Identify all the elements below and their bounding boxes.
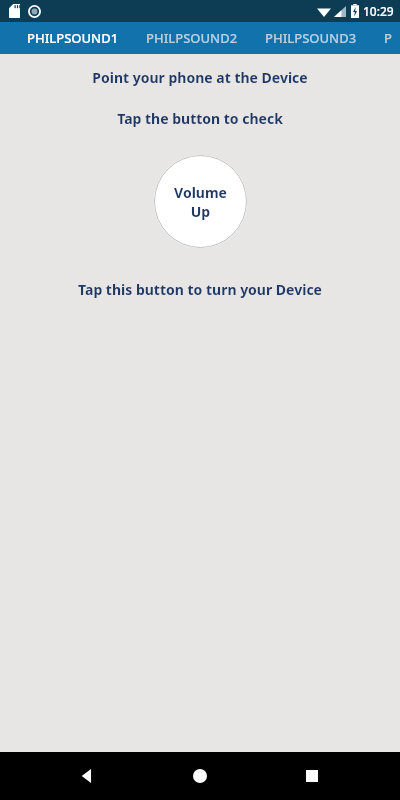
button[interactable]: Back bbox=[64, 752, 112, 800]
staticText: PHILPSOUND1 bbox=[27, 29, 119, 47]
button[interactable]: PHILPSOUND2 bbox=[146, 22, 238, 54]
staticText: Volume Up bbox=[174, 183, 227, 221]
staticText: Tap this button to turn your Device bbox=[78, 280, 322, 299]
button[interactable]: PHILPSOUND4 bbox=[384, 22, 400, 54]
button[interactable]: PHILPSOUND3 bbox=[265, 22, 357, 54]
staticText: Tap the button to check bbox=[117, 109, 283, 128]
button[interactable]: PHILPSOUND1 bbox=[27, 22, 119, 54]
staticText: Point your phone at the Device bbox=[92, 68, 308, 87]
button[interactable]: Home bbox=[176, 752, 224, 800]
button[interactable]: Volume Up bbox=[154, 155, 247, 248]
staticText: PHILPSOUND4 bbox=[384, 29, 400, 47]
button[interactable]: Recent apps bbox=[288, 752, 336, 800]
staticText: PHILPSOUND2 bbox=[146, 29, 238, 47]
staticText: 10:29 bbox=[363, 3, 394, 19]
staticText: PHILPSOUND3 bbox=[265, 29, 357, 47]
